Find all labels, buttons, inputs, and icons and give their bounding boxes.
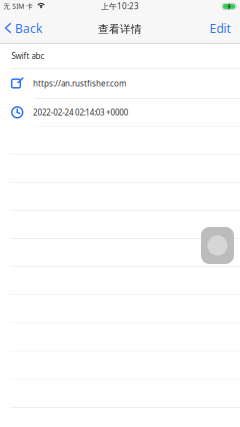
button[interactable]: Swift abc — [0, 43, 240, 68]
button[interactable]: AssistiveTouch — [201, 227, 234, 264]
staticText: Back — [15, 20, 42, 36]
button[interactable]: Back — [0, 16, 47, 42]
staticText: Edit — [209, 20, 230, 36]
staticText: Swift abc — [11, 51, 44, 61]
staticText: https://an.rustfisher.com — [33, 78, 126, 89]
staticText: 上午10:23 — [101, 1, 139, 11]
staticText: 无 SIM 卡 — [3, 2, 33, 11]
staticText: 2022-02-24 02:14:03 +0000 — [33, 107, 129, 118]
staticText: 查看详情 — [98, 23, 142, 36]
button[interactable]: https://an.rustfisher.com — [0, 69, 240, 98]
button[interactable]: 2022-02-24 02:14:03 +0000 — [0, 99, 240, 126]
button[interactable]: Edit — [201, 16, 240, 42]
